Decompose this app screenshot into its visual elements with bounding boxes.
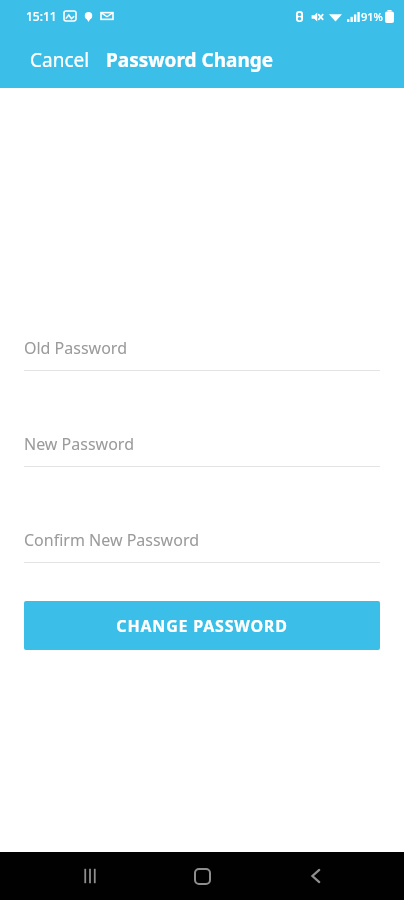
button[interactable]: Confirm New Password bbox=[24, 523, 380, 563]
staticText: New Password bbox=[24, 433, 134, 455]
button[interactable]: Home bbox=[178, 852, 226, 900]
staticText: 15:11 bbox=[26, 8, 57, 24]
button[interactable]: Old Password bbox=[24, 331, 380, 371]
staticText: 91% bbox=[361, 9, 383, 24]
staticText: Confirm New Password bbox=[24, 529, 200, 551]
button[interactable]: Back bbox=[292, 852, 340, 900]
button[interactable]: Cancel bbox=[0, 37, 100, 83]
button[interactable]: New Password bbox=[24, 427, 380, 467]
staticText: Cancel bbox=[30, 47, 90, 73]
staticText: Old Password bbox=[24, 337, 127, 359]
button[interactable]: CHANGE PASSWORD bbox=[24, 601, 380, 650]
staticText: Password Change bbox=[106, 47, 274, 73]
button[interactable]: Recent apps bbox=[66, 852, 114, 900]
staticText: CHANGE PASSWORD bbox=[116, 615, 288, 637]
